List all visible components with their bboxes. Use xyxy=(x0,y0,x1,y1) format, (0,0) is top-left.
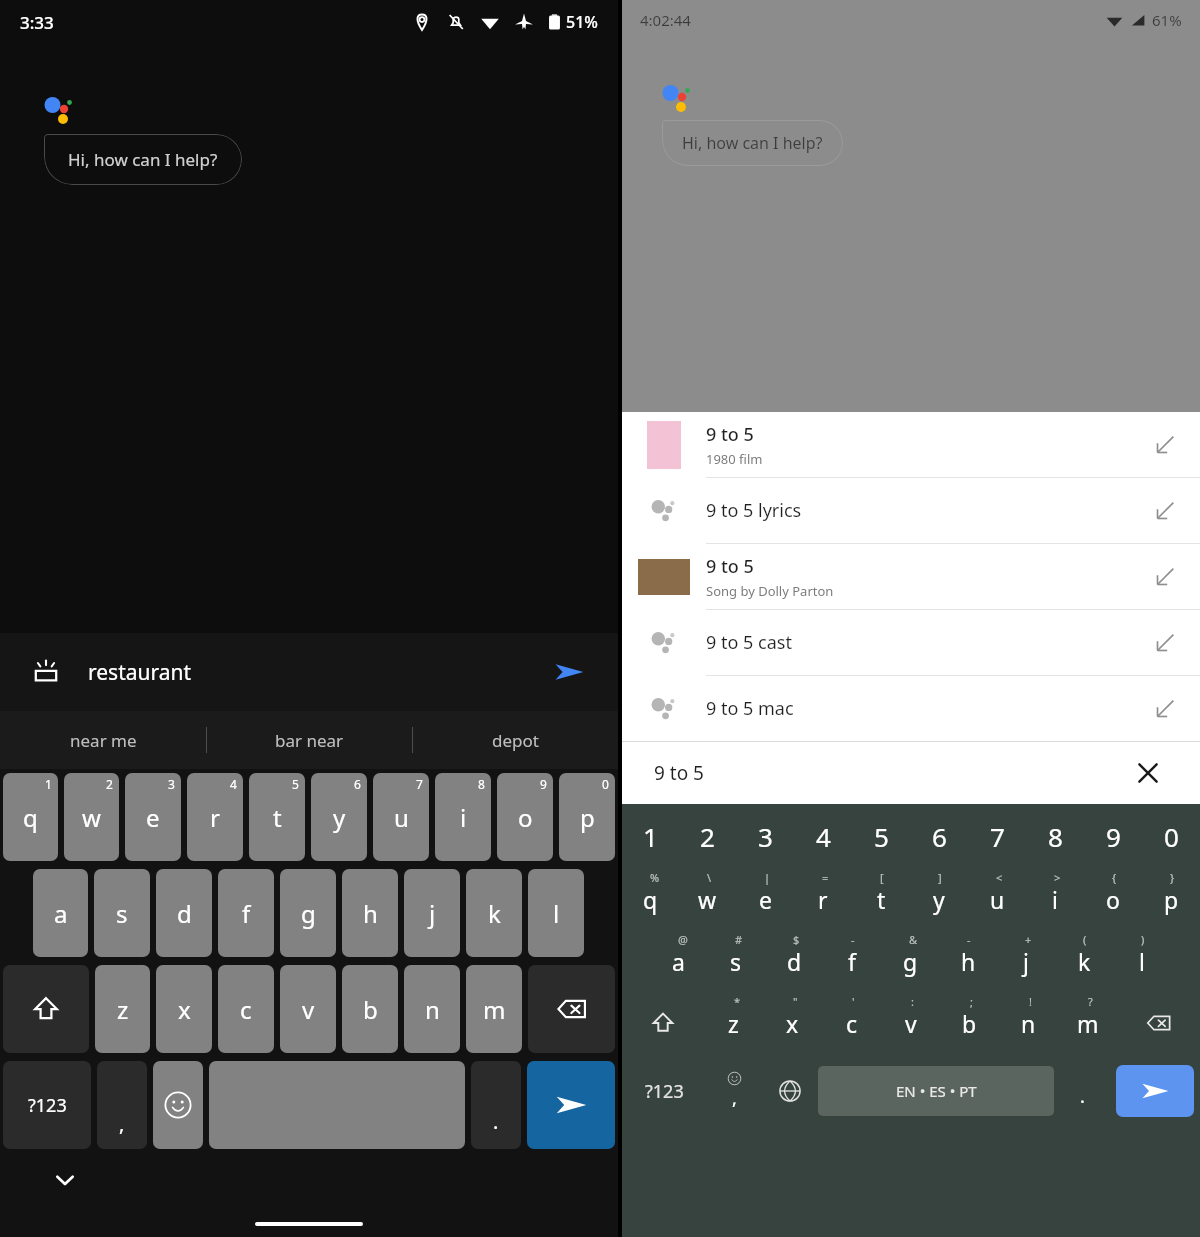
button[interactable]: Insert suggestion xyxy=(1130,412,1200,477)
button[interactable]: Insert suggestion xyxy=(1130,610,1200,675)
button[interactable]: Insert suggestion xyxy=(1130,676,1200,741)
button[interactable]: depot xyxy=(413,711,618,769)
button[interactable]: 9 to 5 lyrics xyxy=(622,478,1200,543)
button[interactable]: , xyxy=(706,1054,762,1128)
button[interactable]: i xyxy=(435,773,491,861)
button[interactable]: g xyxy=(881,930,939,992)
button[interactable]: ?123 xyxy=(622,1054,706,1128)
button[interactable]: 7 xyxy=(968,804,1026,868)
button[interactable]: Send xyxy=(546,649,592,695)
button[interactable]: . xyxy=(471,1061,521,1149)
button[interactable]: i xyxy=(1026,868,1084,930)
staticText: 7 xyxy=(416,776,423,792)
button[interactable]: 5 xyxy=(852,804,910,868)
button[interactable]: q xyxy=(3,773,58,861)
button[interactable]: 9 to 5 mac xyxy=(622,676,1200,741)
button[interactable]: d xyxy=(156,869,212,957)
button[interactable]: Keyboard input xyxy=(0,633,618,711)
button[interactable]: h xyxy=(939,930,997,992)
button[interactable]: Shift xyxy=(622,992,704,1054)
button[interactable]: Hide keyboard xyxy=(50,1165,80,1195)
button[interactable]: Space xyxy=(209,1061,465,1149)
button[interactable]: f xyxy=(218,869,274,957)
button[interactable]: t xyxy=(852,868,910,930)
button[interactable]: x xyxy=(763,992,822,1054)
button[interactable]: u xyxy=(968,868,1026,930)
button[interactable]: Keyboard input xyxy=(26,652,66,692)
button[interactable]: v xyxy=(881,992,940,1054)
button[interactable]: j xyxy=(404,869,460,957)
button[interactable]: k xyxy=(466,869,522,957)
button[interactable]: Clear xyxy=(1128,753,1168,793)
button[interactable]: r xyxy=(794,868,852,930)
button[interactable]: o xyxy=(1084,868,1142,930)
button[interactable]: Emoji xyxy=(153,1061,203,1149)
button[interactable]: w xyxy=(64,773,119,861)
button[interactable]: m xyxy=(1058,992,1117,1054)
button[interactable]: k xyxy=(1055,930,1113,992)
button[interactable]: Backspace xyxy=(1117,992,1200,1054)
button[interactable]: a xyxy=(33,869,88,957)
button[interactable]: p xyxy=(559,773,615,861)
button[interactable]: Send message xyxy=(527,1061,615,1149)
staticText: - xyxy=(967,932,971,947)
button[interactable]: d xyxy=(765,930,823,992)
button[interactable]: x xyxy=(156,965,212,1053)
button[interactable]: m xyxy=(466,965,522,1053)
button[interactable]: 6 xyxy=(910,804,968,868)
button[interactable]: l xyxy=(528,869,584,957)
button[interactable]: 9 to 5 cast xyxy=(622,610,1200,675)
button[interactable]: e xyxy=(125,773,181,861)
button[interactable]: Insert suggestion xyxy=(1130,544,1200,609)
button[interactable]: EN • ES • PT xyxy=(818,1066,1054,1116)
button[interactable]: , xyxy=(97,1061,147,1149)
button[interactable]: g xyxy=(280,869,336,957)
button[interactable]: Insert suggestion xyxy=(1130,478,1200,543)
button[interactable]: n xyxy=(404,965,460,1053)
button[interactable]: bar near xyxy=(207,711,412,769)
button[interactable]: z xyxy=(95,965,150,1053)
button[interactable]: p xyxy=(1142,868,1200,930)
button[interactable]: 3 xyxy=(736,804,794,868)
button[interactable]: 9 to 5 xyxy=(622,544,1200,609)
button[interactable]: u xyxy=(373,773,429,861)
button[interactable]: h xyxy=(342,869,398,957)
button[interactable]: 8 xyxy=(1026,804,1084,868)
button[interactable]: s xyxy=(94,869,150,957)
button[interactable]: 9 xyxy=(1084,804,1142,868)
button[interactable]: y xyxy=(311,773,367,861)
button[interactable]: s xyxy=(707,930,765,992)
button[interactable]: b xyxy=(940,992,999,1054)
button[interactable]: v xyxy=(280,965,336,1053)
button[interactable]: o xyxy=(497,773,553,861)
button[interactable]: 9 to 5 xyxy=(622,412,1200,477)
button[interactable]: e xyxy=(736,868,794,930)
staticText: g xyxy=(903,946,918,977)
button[interactable]: z xyxy=(704,992,763,1054)
button[interactable]: Send xyxy=(1116,1065,1194,1117)
button[interactable]: y xyxy=(910,868,968,930)
button[interactable]: 0 xyxy=(1142,804,1200,868)
button[interactable]: 2 xyxy=(679,804,736,868)
button[interactable]: r xyxy=(187,773,243,861)
button[interactable]: . xyxy=(1054,1054,1110,1128)
button[interactable]: 9 to 5 xyxy=(622,742,1200,804)
button[interactable]: 1 xyxy=(622,804,679,868)
button[interactable]: a xyxy=(650,930,707,992)
button[interactable]: q xyxy=(622,868,679,930)
button[interactable]: f xyxy=(823,930,881,992)
button[interactable]: Change language xyxy=(762,1054,818,1128)
button[interactable]: 4 xyxy=(794,804,852,868)
button[interactable]: b xyxy=(342,965,398,1053)
button[interactable]: t xyxy=(249,773,305,861)
button[interactable]: c xyxy=(218,965,274,1053)
button[interactable]: Backspace xyxy=(528,965,615,1053)
button[interactable]: w xyxy=(679,868,736,930)
button[interactable]: l xyxy=(1113,930,1171,992)
button[interactable]: ?123 xyxy=(3,1061,91,1149)
button[interactable]: j xyxy=(997,930,1055,992)
button[interactable]: Shift xyxy=(3,965,89,1053)
button[interactable]: near me xyxy=(0,711,206,769)
button[interactable]: c xyxy=(822,992,881,1054)
button[interactable]: n xyxy=(999,992,1058,1054)
